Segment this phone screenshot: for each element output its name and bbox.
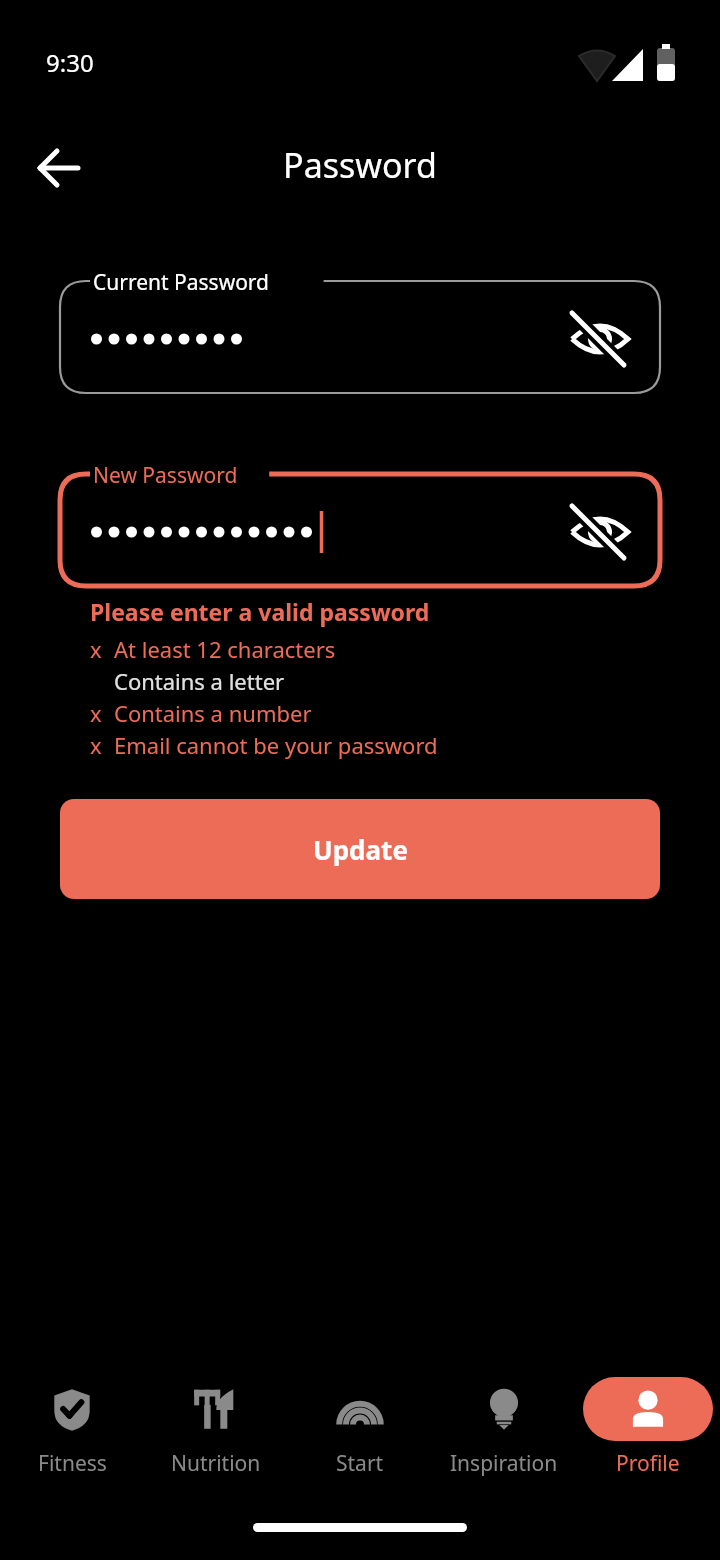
- staticText: x: [90, 730, 102, 760]
- staticText: 9:30: [46, 46, 94, 79]
- button[interactable]: Start: [288, 1370, 432, 1500]
- button[interactable]: Fitness: [0, 1370, 144, 1500]
- staticText: Contains a letter: [114, 666, 285, 696]
- staticText: Email cannot be your password: [114, 730, 438, 760]
- staticText: x: [90, 634, 102, 664]
- staticText: Nutrition: [171, 1449, 261, 1478]
- button[interactable]: New Password: [60, 474, 660, 586]
- staticText: Fitness: [38, 1449, 107, 1478]
- staticText: Update: [313, 832, 408, 867]
- staticText: Current Password: [93, 268, 270, 297]
- staticText: x: [90, 698, 102, 728]
- button[interactable]: Nutrition: [144, 1370, 288, 1500]
- staticText: At least 12 characters: [114, 634, 336, 664]
- button[interactable]: Update: [60, 799, 660, 899]
- button[interactable]: Back: [26, 136, 90, 200]
- staticText: Please enter a valid password: [90, 596, 430, 627]
- staticText: Inspiration: [450, 1449, 558, 1478]
- button[interactable]: Current Password: [60, 281, 660, 393]
- staticText: Profile: [616, 1449, 680, 1478]
- button[interactable]: Inspiration: [432, 1370, 576, 1500]
- button[interactable]: Profile: [576, 1370, 720, 1500]
- staticText: New Password: [93, 461, 238, 490]
- staticText: Start: [336, 1449, 384, 1478]
- staticText: Password: [0, 142, 720, 188]
- staticText: Contains a number: [114, 698, 312, 728]
